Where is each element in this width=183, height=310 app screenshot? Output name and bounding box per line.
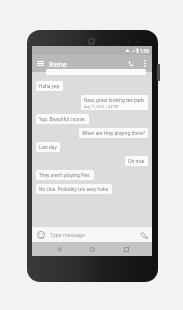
button[interactable]: Back	[52, 242, 66, 256]
button[interactable]: Attach file	[137, 228, 150, 241]
staticText: No clue. Probably too easy haha	[39, 186, 109, 192]
button[interactable]: Now, great looking tee pads	[81, 95, 148, 110]
staticText: 1:59	[140, 48, 149, 54]
button[interactable]: Haha yep	[36, 81, 63, 91]
button[interactable]: Last day	[36, 142, 60, 152]
staticText: They aren't playing Pier.	[39, 172, 91, 178]
staticText: Now, great looking tee pads	[84, 97, 145, 103]
button[interactable]: They aren't playing Pier.	[36, 170, 94, 180]
button[interactable]: No clue. Probably too easy haha	[36, 184, 112, 194]
staticText: Last day	[39, 144, 57, 150]
button[interactable]: When are they playing there?	[79, 128, 148, 138]
staticText: When are they playing there?	[82, 130, 145, 136]
button[interactable]: Type message	[50, 227, 137, 242]
button[interactable]: Open navigation menu	[32, 55, 49, 72]
button[interactable]: Home	[85, 242, 99, 256]
staticText: Yup. Beautiful course.	[39, 116, 86, 122]
staticText: Rene	[49, 59, 68, 69]
button[interactable]: Recent apps	[119, 242, 133, 256]
button[interactable]: Yup. Beautiful course.	[36, 114, 89, 124]
staticText: Haha yep	[39, 83, 60, 89]
staticText: Type message	[50, 231, 85, 238]
staticText: Aug 11, 2015, 1:43 PM	[84, 104, 119, 108]
button[interactable]: Oh nice	[125, 156, 148, 166]
staticText: Oh nice	[128, 158, 145, 164]
button[interactable]: More options	[138, 57, 151, 70]
button[interactable]: Insert emoji	[35, 229, 46, 240]
button[interactable]: Call	[123, 56, 138, 71]
